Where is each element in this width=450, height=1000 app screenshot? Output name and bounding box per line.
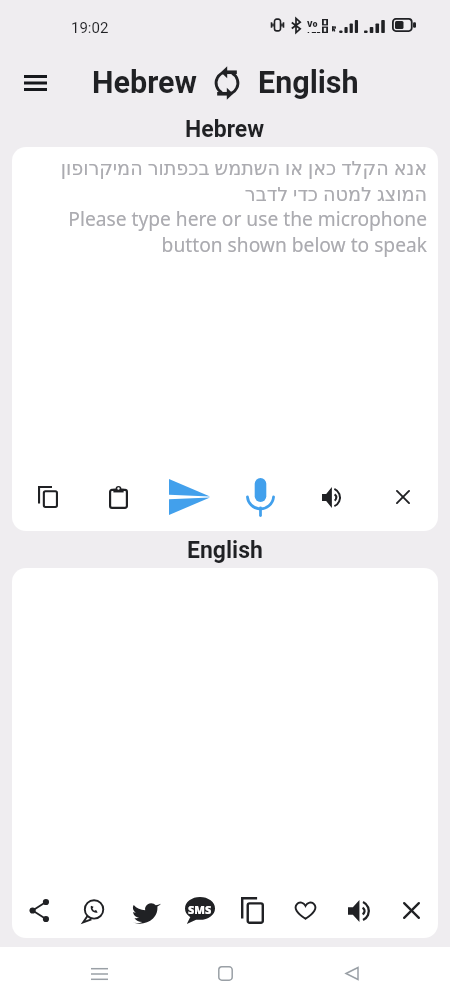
staticText: אנא הקלד כאן או השתמש בכפתור המיקרופון ה… xyxy=(26,154,427,258)
button[interactable]: Back xyxy=(324,947,380,1000)
button[interactable]: Microphone xyxy=(225,463,296,531)
button[interactable]: English xyxy=(258,65,359,101)
button[interactable]: Share xyxy=(12,883,66,938)
button[interactable]: WhatsApp xyxy=(66,883,120,938)
button[interactable]: Paste xyxy=(83,463,154,531)
button[interactable]: Twitter xyxy=(120,883,173,938)
button[interactable]: Copy xyxy=(226,883,279,938)
staticText: Hebrew xyxy=(185,116,265,143)
staticText: English xyxy=(187,537,263,564)
button[interactable]: Menu xyxy=(10,58,60,108)
button[interactable]: Favourite xyxy=(279,883,332,938)
button[interactable]: Hebrew xyxy=(92,65,197,101)
button[interactable]: Copy xyxy=(12,463,83,531)
staticText: Vo xyxy=(307,18,318,29)
button[interactable]: SMS xyxy=(173,883,226,938)
button[interactable]: Clear xyxy=(367,463,438,531)
button[interactable]: Clear xyxy=(385,883,438,938)
button[interactable]: Speak xyxy=(332,883,385,938)
staticText: SMS xyxy=(188,902,212,917)
button[interactable]: Speak xyxy=(296,463,367,531)
button[interactable]: Send xyxy=(154,463,225,531)
button[interactable]: Recents xyxy=(71,947,127,1000)
button[interactable]: Swap languages xyxy=(209,65,245,101)
staticText: 19:02 xyxy=(71,19,109,37)
button[interactable]: Home xyxy=(197,947,253,1000)
staticText: LTE xyxy=(307,29,321,33)
